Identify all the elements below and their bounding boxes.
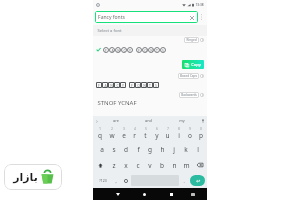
staticText: n [172, 161, 177, 170]
button[interactable]: More options [198, 9, 205, 24]
button[interactable]: 2 [106, 125, 118, 141]
staticText: N [110, 83, 113, 88]
button[interactable]: Cafe Bazaar [4, 164, 62, 190]
button[interactable]: 6 [151, 125, 162, 141]
button[interactable]: 8 [173, 125, 184, 141]
staticText: Copy [191, 62, 201, 67]
button[interactable]: m [180, 157, 192, 173]
button[interactable]: . [179, 175, 189, 186]
button[interactable]: and [132, 116, 165, 125]
button[interactable]: Emoji [121, 175, 131, 186]
button[interactable]: z [108, 157, 120, 173]
staticText: v [148, 161, 152, 170]
button[interactable]: k [180, 141, 192, 157]
staticText: g [148, 145, 152, 154]
button[interactable]: 3 [118, 125, 129, 141]
button[interactable]: Clear text [189, 15, 195, 21]
button[interactable]: Shift [93, 157, 108, 173]
staticText: A [104, 83, 107, 88]
button[interactable]: F [93, 43, 207, 56]
staticText: C [116, 83, 119, 88]
staticText: d [124, 145, 128, 154]
staticText: O [144, 48, 147, 53]
staticText: w [109, 131, 115, 140]
button[interactable]: Expand suggestions [93, 116, 100, 125]
button[interactable]: are [100, 116, 132, 125]
staticText: m [183, 161, 190, 170]
button[interactable]: c [132, 157, 144, 173]
button[interactable]: a [96, 141, 108, 157]
button[interactable]: Home [136, 188, 153, 200]
staticText: 2 [111, 127, 113, 131]
button[interactable]: j [168, 141, 180, 157]
button[interactable]: d [120, 141, 132, 157]
button[interactable]: Voice input [198, 116, 207, 125]
staticText: F [98, 83, 100, 88]
staticText: بازار [13, 171, 38, 184]
staticText: 7 [167, 127, 169, 131]
staticText: Backwards [181, 93, 197, 97]
staticText: › [96, 118, 98, 124]
staticText: T [149, 83, 151, 88]
button[interactable]: Boxed Caps [178, 73, 204, 79]
staticText: s [112, 145, 116, 154]
staticText: N [150, 48, 153, 53]
staticText: 3 [123, 127, 125, 131]
staticText: and [145, 118, 152, 123]
button[interactable]: Backwards [179, 92, 204, 98]
staticText: . [183, 178, 185, 184]
staticText: k [184, 145, 188, 154]
staticText: N [117, 48, 120, 53]
button[interactable]: 0 [195, 125, 206, 141]
button[interactable]: l [192, 141, 204, 157]
staticText: T [156, 48, 158, 53]
button[interactable]: STNOF YCNAF [93, 98, 207, 108]
staticText: e [122, 131, 126, 140]
staticText: y [155, 131, 159, 140]
staticText: p [199, 131, 203, 140]
button[interactable]: Recents [163, 188, 180, 200]
staticText: Fancy fonts [98, 14, 125, 21]
staticText: Select a font [97, 28, 122, 34]
button[interactable]: Fancy fonts [95, 11, 198, 23]
button[interactable]: Backspace [192, 157, 207, 173]
button[interactable]: ?123 [94, 175, 111, 186]
staticText: u [165, 131, 170, 140]
button[interactable]: 7 [162, 125, 173, 141]
staticText: my [179, 118, 185, 123]
button[interactable]: Ringed [184, 37, 204, 43]
staticText: q [98, 131, 102, 140]
button[interactable]: n [168, 157, 180, 173]
staticText: a [100, 145, 104, 154]
button[interactable]: , [111, 175, 121, 186]
button[interactable]: f [132, 141, 144, 157]
staticText: F [131, 83, 133, 88]
button[interactable]: Back [109, 188, 126, 200]
staticText: S [155, 83, 157, 88]
button[interactable]: F [93, 79, 207, 91]
button[interactable]: 9 [184, 125, 195, 141]
button[interactable]: Switch keyboard [184, 188, 201, 200]
staticText: S [162, 48, 164, 53]
staticText: r [133, 131, 136, 140]
staticText: c [136, 161, 140, 170]
staticText: i [178, 131, 180, 140]
button[interactable]: x [120, 157, 132, 173]
staticText: F [105, 48, 107, 53]
button[interactable]: g [144, 141, 156, 157]
button[interactable]: Enter [190, 175, 205, 186]
button[interactable]: 4 [129, 125, 140, 141]
button[interactable]: h [156, 141, 168, 157]
staticText: 13:38 [195, 3, 204, 7]
button[interactable]: 1 [94, 125, 106, 141]
staticText: 5 [145, 127, 147, 131]
button[interactable]: b [156, 157, 168, 173]
staticText: Y [122, 83, 124, 88]
button[interactable]: v [144, 157, 156, 173]
button[interactable]: Copy [182, 60, 204, 69]
button[interactable]: my [165, 116, 198, 125]
button[interactable]: 5 [140, 125, 151, 141]
button[interactable]: s [108, 141, 120, 157]
